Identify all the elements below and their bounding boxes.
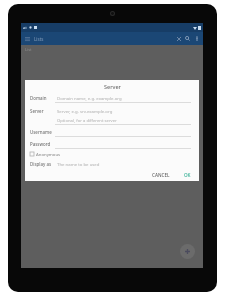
- staticText: Optional, for a different server: [57, 118, 117, 124]
- staticText: OK: [184, 172, 191, 178]
- staticText: Server: [104, 83, 121, 90]
- staticText: CANCEL: [152, 172, 170, 178]
- button[interactable]: More options: [192, 34, 201, 43]
- button[interactable]: Add: [180, 244, 195, 259]
- staticText: Domain name, e.g. example.org: [57, 95, 122, 101]
- staticText: Password: [30, 141, 51, 147]
- button[interactable]: Anonymous: [25, 149, 199, 159]
- staticText: Server, e.g. srv.example.org: [57, 108, 113, 114]
- staticText: List: [25, 47, 32, 52]
- button[interactable]: Navigation menu: [23, 34, 32, 43]
- staticText: Server: [30, 108, 44, 114]
- staticText: Lists: [34, 36, 44, 42]
- staticText: The name to be used: [57, 161, 100, 167]
- staticText: Domain: [30, 95, 47, 101]
- staticText: Username: [30, 129, 52, 135]
- button[interactable]: OK: [180, 170, 195, 180]
- button[interactable]: CANCEL: [148, 170, 174, 180]
- staticText: Anonymous: [36, 151, 61, 157]
- button[interactable]: Clear: [174, 34, 183, 43]
- staticText: Display as: [30, 161, 52, 167]
- button[interactable]: Search: [183, 34, 192, 43]
